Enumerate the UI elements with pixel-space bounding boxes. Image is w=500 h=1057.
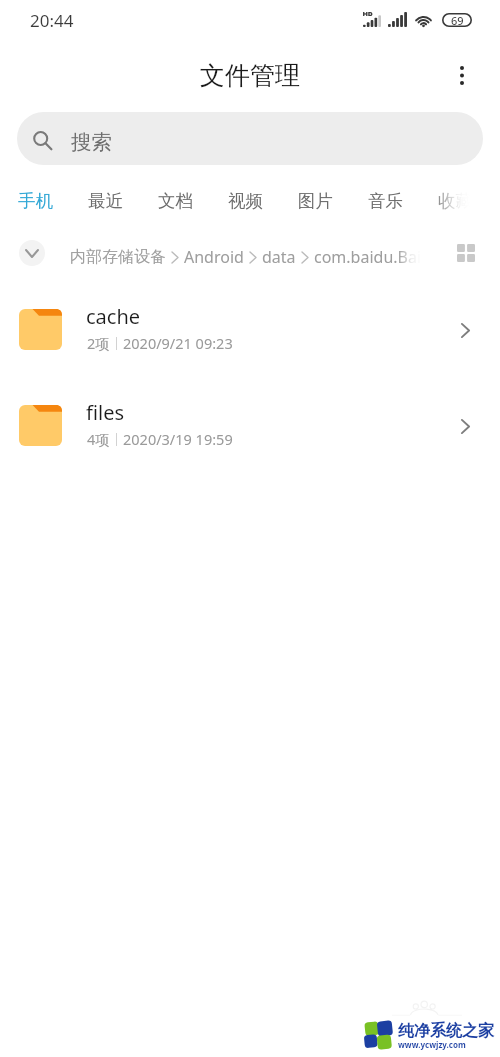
button[interactable]: cache: [0, 282, 500, 378]
button[interactable]: 文档: [158, 190, 193, 212]
staticText: data: [262, 246, 296, 268]
button[interactable]: 搜索: [17, 112, 483, 165]
staticText: 20:44: [30, 9, 74, 32]
button[interactable]: 音乐: [368, 190, 403, 212]
staticText: cache: [86, 303, 141, 330]
button[interactable]: 收藏: [438, 190, 473, 212]
staticText: www.ycwjzy.com: [398, 1039, 466, 1050]
button[interactable]: files: [0, 378, 500, 474]
staticText: 图片: [298, 190, 333, 212]
staticText: 搜索: [71, 129, 112, 155]
staticText: 2项: [87, 333, 110, 353]
staticText: 最近: [88, 190, 123, 212]
button[interactable]: 最近: [88, 190, 123, 212]
staticText: 69: [451, 13, 464, 27]
staticText: 文档: [158, 190, 193, 212]
staticText: Android: [184, 246, 244, 268]
button[interactable]: 手机: [18, 190, 53, 212]
staticText: 内部存储设备: [70, 247, 166, 267]
button[interactable]: Collapse path: [19, 240, 45, 266]
staticText: 手机: [18, 190, 53, 212]
staticText: files: [86, 399, 125, 426]
staticText: 2020/3/19 19:59: [123, 429, 233, 449]
staticText: 视频: [228, 190, 263, 212]
staticText: 收藏: [438, 190, 473, 212]
staticText: 文件管理: [200, 60, 300, 91]
button[interactable]: Grid view: [448, 235, 484, 271]
staticText: 纯净系统之家: [398, 1021, 494, 1041]
staticText: 2020/9/21 09:23: [123, 333, 233, 353]
staticText: 音乐: [368, 190, 403, 212]
button[interactable]: 视频: [228, 190, 263, 212]
button[interactable]: More options: [440, 53, 484, 97]
staticText: com.baidu.Baidu: [314, 246, 428, 268]
staticText: 4项: [87, 429, 110, 449]
button[interactable]: 图片: [298, 190, 333, 212]
